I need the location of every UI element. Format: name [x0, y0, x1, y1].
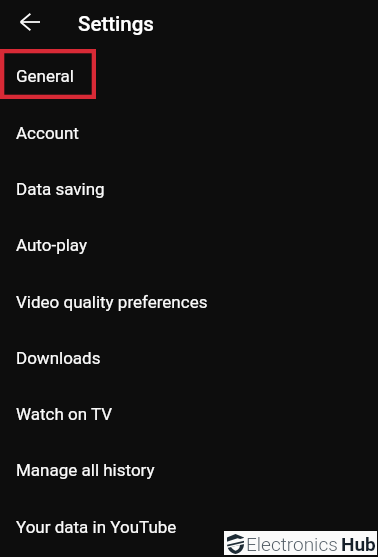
button[interactable]: Account [0, 105, 378, 161]
staticText: Video quality preferences [16, 292, 208, 312]
button[interactable]: Data saving [0, 161, 378, 217]
button[interactable]: General [0, 48, 378, 104]
staticText: Auto-play [16, 235, 88, 255]
staticText: Settings [78, 12, 154, 36]
button[interactable]: Auto-play [0, 217, 378, 273]
staticText: Electronics [246, 533, 338, 555]
button[interactable]: Your data in YouTube [0, 499, 378, 555]
staticText: General [16, 66, 74, 86]
staticText: Hub [341, 533, 376, 555]
staticText: Account [16, 123, 79, 143]
staticText: Your data in YouTube [16, 517, 177, 537]
button[interactable]: Video quality preferences [0, 274, 378, 330]
staticText: Data saving [16, 179, 105, 199]
button[interactable]: Downloads [0, 330, 378, 386]
staticText: Manage all history [16, 460, 155, 480]
button[interactable]: Watch on TV [0, 386, 378, 442]
staticText: Downloads [16, 348, 101, 368]
staticText: Watch on TV [16, 404, 113, 424]
button[interactable]: Manage all history [0, 442, 378, 498]
button[interactable]: Back [8, 0, 52, 44]
